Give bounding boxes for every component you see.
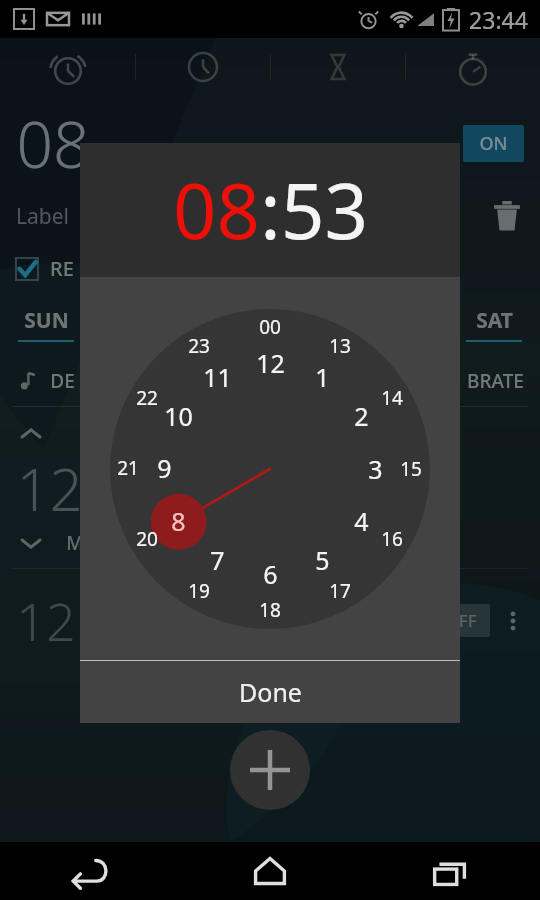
staticText: 2 — [354, 399, 369, 433]
staticText: 6 — [263, 557, 278, 591]
button[interactable]: Done — [80, 661, 460, 723]
button[interactable]: 53 — [281, 158, 368, 262]
staticText: Done — [239, 675, 302, 709]
staticText: 22 — [136, 385, 158, 411]
staticText: 10 — [164, 399, 193, 433]
button[interactable]: Timer — [271, 38, 405, 96]
button[interactable]: Stopwatch — [406, 38, 540, 96]
other: More options — [502, 610, 524, 632]
staticText: 15 — [400, 456, 422, 482]
staticText: SAT — [476, 306, 513, 335]
button[interactable]: Alarm — [0, 38, 135, 96]
staticText: 21 — [117, 455, 139, 481]
staticText: 12 — [256, 346, 285, 380]
button[interactable]: Recent apps — [360, 842, 540, 900]
staticText: 00 — [259, 314, 281, 340]
staticText: 19 — [188, 578, 210, 604]
staticText: 20 — [136, 526, 158, 552]
staticText: 12:50 — [16, 585, 148, 656]
staticText: 08 — [173, 158, 260, 262]
staticText: 53 — [281, 158, 368, 262]
other: Delete — [490, 199, 524, 233]
button[interactable]: Back — [0, 842, 180, 900]
staticText: : — [260, 158, 281, 262]
button[interactable]: ON — [463, 125, 524, 162]
staticText: RE — [50, 255, 74, 282]
staticText: 5 — [315, 543, 330, 577]
staticText: 12 — [16, 449, 83, 528]
button[interactable]: Home — [180, 842, 360, 900]
staticText: 9 — [157, 451, 172, 485]
staticText: 3 — [368, 452, 383, 486]
staticText: 8 — [171, 504, 186, 538]
staticText: 23:44 — [469, 4, 528, 35]
staticText: 4 — [354, 504, 369, 538]
button[interactable]: SAT — [460, 306, 528, 342]
staticText: BRATE — [467, 368, 524, 394]
staticText: SUN — [24, 306, 69, 335]
staticText: 23 — [188, 333, 210, 359]
staticText: M — [66, 530, 84, 556]
staticText: 17 — [329, 578, 351, 604]
staticText: 11 — [203, 360, 232, 394]
staticText: 08 — [16, 100, 90, 187]
button[interactable]: Clock — [136, 38, 270, 96]
staticText: DE — [50, 368, 75, 394]
staticText: 16 — [381, 526, 403, 552]
staticText: OFF — [445, 609, 477, 632]
button[interactable]: Add alarm — [230, 730, 310, 810]
button[interactable]: 08 — [173, 158, 260, 262]
staticText: Label — [16, 202, 69, 231]
staticText: 14 — [381, 385, 403, 411]
staticText: 18 — [259, 597, 281, 623]
staticText: 1 — [315, 360, 330, 394]
staticText: 13 — [329, 333, 351, 359]
staticText: ON — [479, 131, 508, 156]
button[interactable]: SUN — [12, 306, 80, 342]
staticText: 7 — [210, 543, 225, 577]
button[interactable]: OFF — [432, 604, 490, 637]
